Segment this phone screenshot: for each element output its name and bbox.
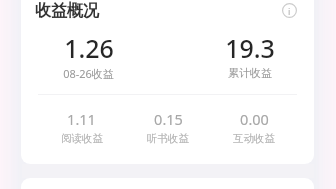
staticText: 收益概况: [35, 1, 99, 21]
button[interactable]: 0.00: [211, 109, 297, 145]
button[interactable]: 19.3: [195, 31, 305, 80]
staticText: 0.15: [154, 109, 183, 129]
staticText: 互动收益: [233, 132, 275, 145]
staticText: 0.00: [240, 109, 269, 129]
button[interactable]: 收益概况: [35, 1, 99, 21]
staticText: 听书收益: [147, 132, 189, 145]
button[interactable]: 收益说明: [279, 0, 300, 21]
staticText: i: [288, 5, 291, 17]
staticText: 1.26: [64, 31, 114, 65]
staticText: 阅读收益: [61, 132, 103, 145]
button[interactable]: 1.26: [33, 31, 143, 81]
staticText: 08-26收益: [63, 66, 114, 81]
staticText: 19.3: [225, 31, 275, 65]
staticText: 1.11: [67, 109, 96, 129]
button[interactable]: 1.11: [38, 109, 125, 145]
staticText: 累计收益: [228, 66, 272, 80]
button[interactable]: 0.15: [125, 109, 211, 145]
